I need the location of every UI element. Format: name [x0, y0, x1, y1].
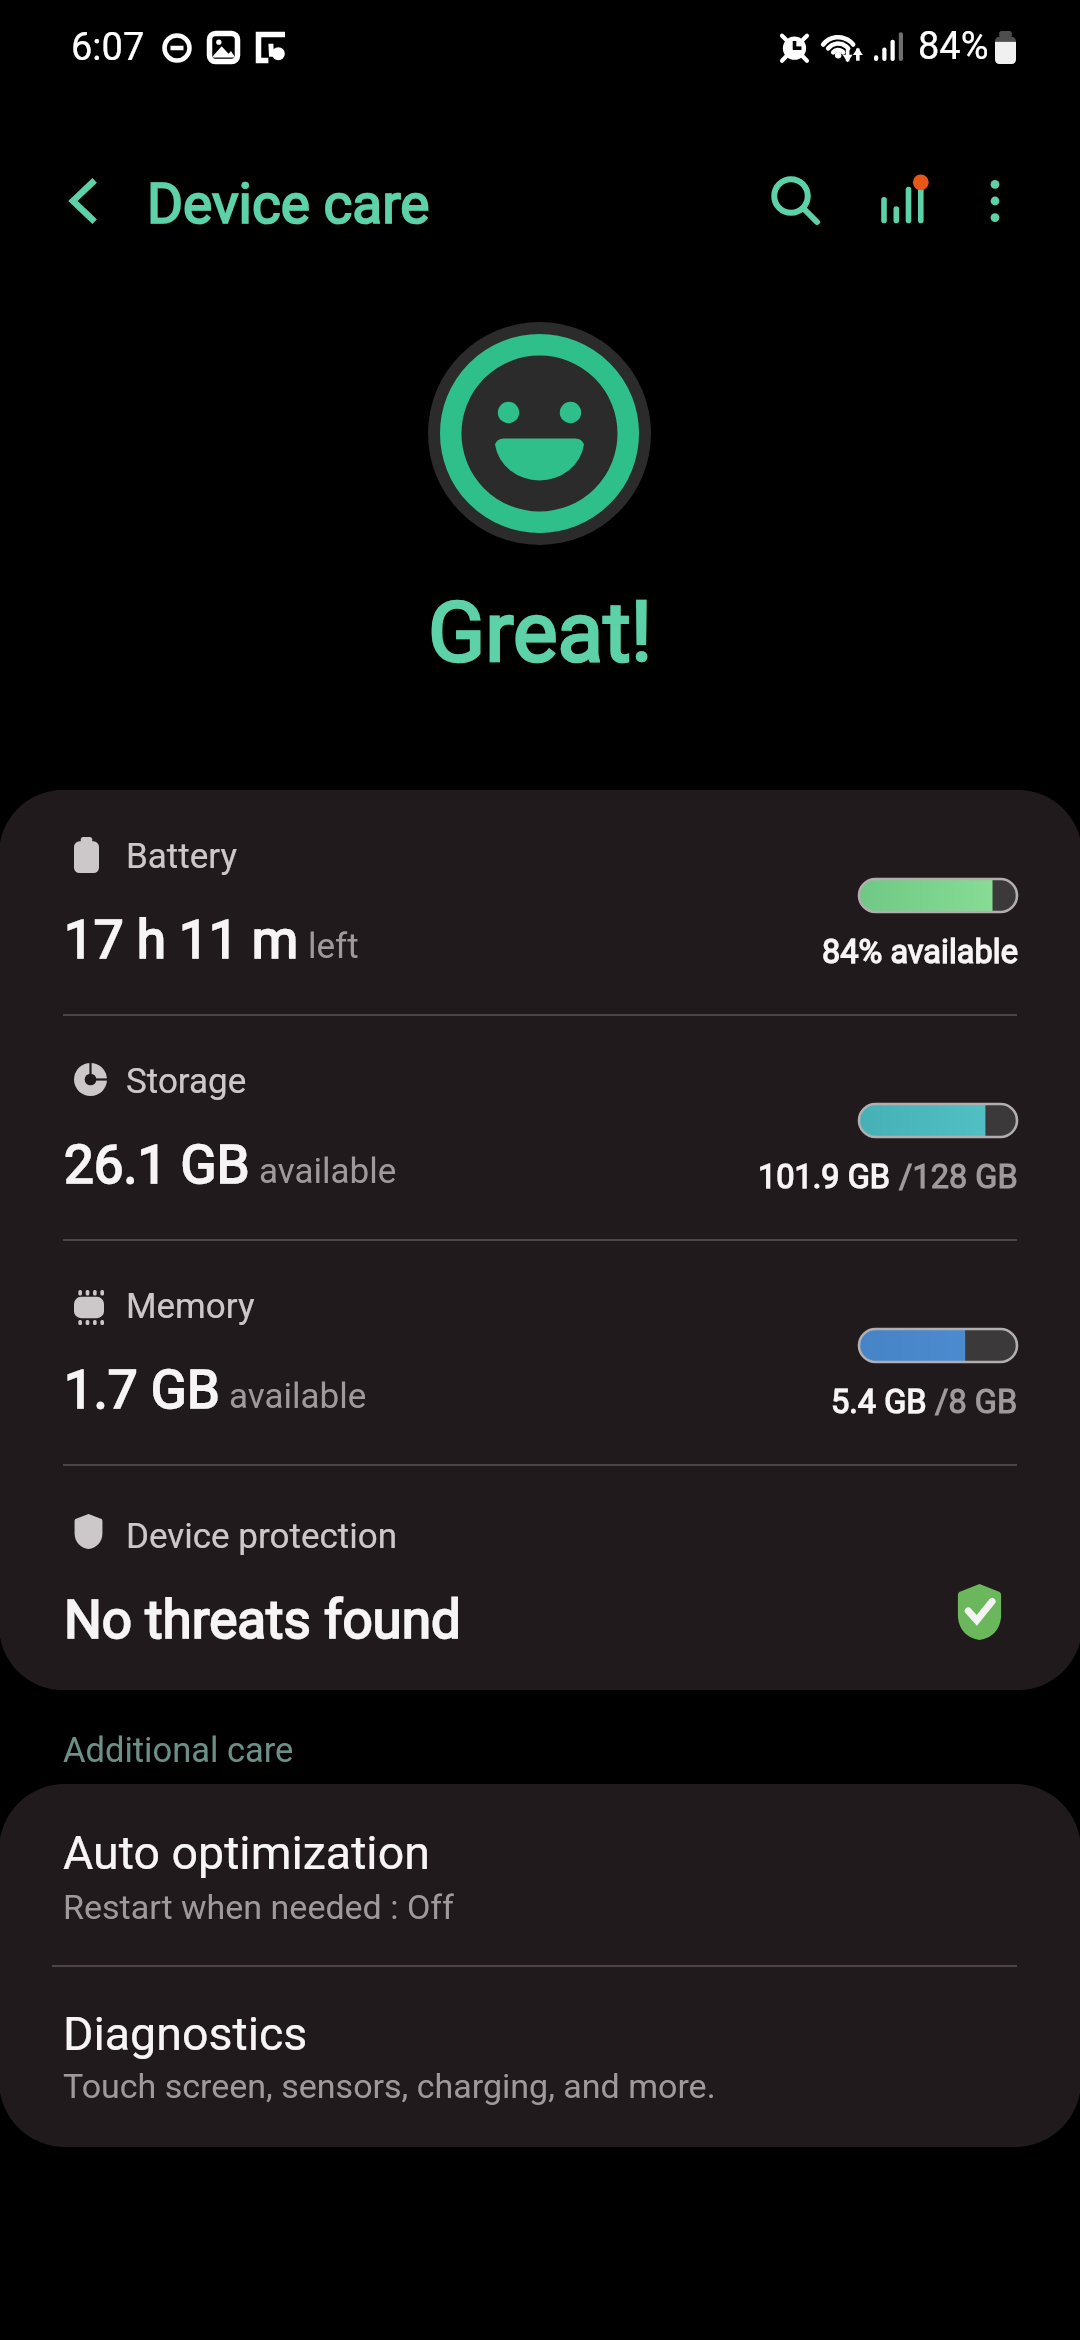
staticText: 26.1 GB: [64, 1134, 250, 1196]
staticText: Battery: [126, 836, 238, 877]
staticText: Memory: [126, 1286, 255, 1327]
staticText: /128 GB: [891, 1158, 1018, 1196]
button[interactable]: [0, 1784, 1080, 1966]
staticText: 6:07: [71, 25, 145, 70]
staticText: Auto optimization: [63, 1826, 430, 1880]
button[interactable]: More options: [939, 145, 1051, 257]
button[interactable]: [0, 1465, 1080, 1690]
staticText: 5.4 GB: [831, 1383, 927, 1421]
button[interactable]: [0, 790, 1080, 1015]
button[interactable]: [0, 1240, 1080, 1465]
staticText: 84% available: [822, 933, 1018, 971]
staticText: available: [259, 1151, 397, 1192]
staticText: 1.7 GB: [64, 1359, 220, 1421]
staticText: 84%: [918, 24, 989, 69]
button[interactable]: [0, 1966, 1080, 2147]
staticText: 17 h 11 m: [64, 909, 299, 971]
staticText: /8 GB: [927, 1383, 1018, 1421]
staticText: No threats found: [64, 1589, 461, 1651]
staticText: Device care: [147, 172, 430, 236]
staticText: Additional care: [63, 1730, 294, 1770]
staticText: available: [229, 1376, 367, 1417]
button[interactable]: [0, 1015, 1080, 1240]
staticText: Touch screen, sensors, charging, and mor…: [63, 2066, 716, 2106]
staticText: Device protection: [126, 1516, 398, 1557]
staticText: Diagnostics: [63, 2007, 308, 2061]
button[interactable]: Usage statistics: [846, 145, 958, 257]
staticText: left: [308, 926, 359, 967]
staticText: Great!: [428, 583, 653, 681]
staticText: 101.9 GB: [758, 1158, 891, 1196]
staticText: Storage: [126, 1061, 247, 1102]
button[interactable]: Search: [740, 145, 852, 257]
button[interactable]: Back: [28, 145, 140, 257]
staticText: Restart when needed : Off: [63, 1887, 454, 1927]
